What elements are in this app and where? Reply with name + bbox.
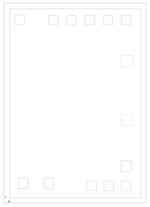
button[interactable]: Tab 1 [83,177,101,195]
button[interactable]: Action 1 [45,11,63,29]
button[interactable]: Expand [117,110,137,130]
button[interactable]: Action 5 [117,11,135,29]
button[interactable]: Tab 2 [100,177,118,195]
button[interactable]: Home [14,174,32,192]
button[interactable]: Navigation menu [11,11,29,29]
button[interactable]: Add [116,156,136,176]
button[interactable]: More options [117,51,137,71]
button[interactable]: Action 4 [99,11,117,29]
button[interactable]: Tab 3 [117,177,135,195]
button[interactable]: Action 2 [63,11,81,29]
button[interactable]: Action 3 [81,11,99,29]
button[interactable]: Search [40,174,58,192]
